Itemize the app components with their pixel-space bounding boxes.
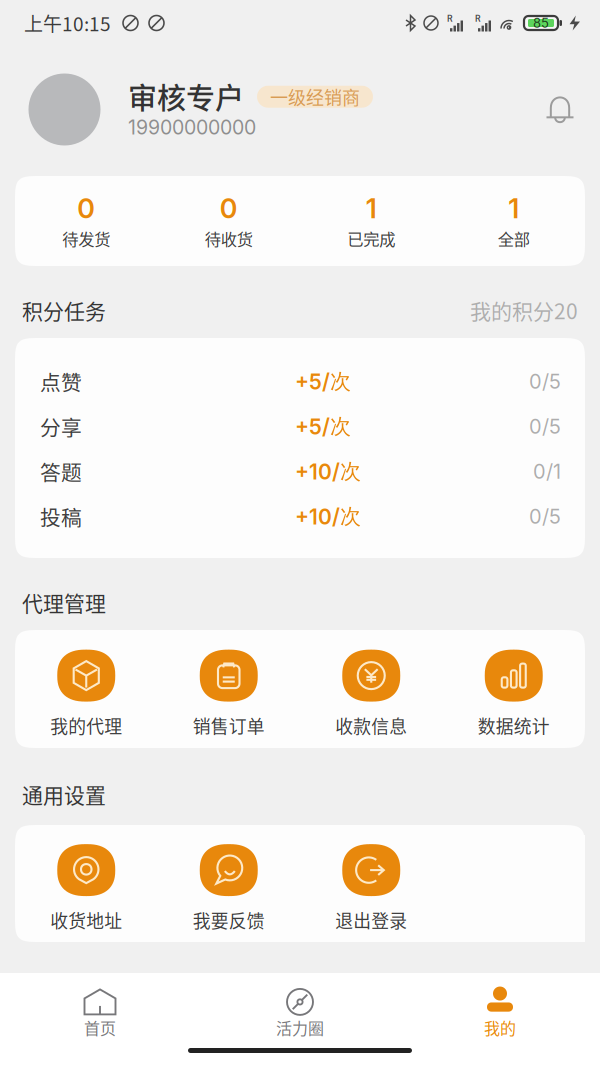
button[interactable]: 1 [300,176,442,266]
staticText: R [475,13,481,24]
staticText: 我要反馈 [193,907,265,933]
staticText: 退出登录 [335,907,407,933]
staticText: +5/次 [295,413,351,440]
staticText: 0 [77,192,95,225]
staticText: 收款信息 [335,713,407,738]
staticText: +5/次 [295,368,351,395]
staticText: +10/次 [295,503,361,530]
staticText: 销售订单 [193,713,265,738]
button[interactable]: 我要反馈 [157,844,300,933]
staticText: 0 [220,192,238,225]
button[interactable]: 退出登录 [300,844,442,933]
staticText: 待收货 [205,227,253,250]
staticText: 19900000000 [128,116,256,139]
button[interactable]: 通知 [534,83,586,135]
staticText: 我的 [484,1016,516,1039]
staticText: 1 [508,192,519,225]
staticText: 首页 [84,1016,116,1039]
button[interactable]: 我的 [400,989,600,1039]
button[interactable]: 首页 [0,989,200,1039]
staticText: 85 [533,15,549,31]
staticText: 全部 [498,227,530,250]
button[interactable]: 点赞 [15,359,585,404]
staticText: 投稿 [40,501,82,531]
button[interactable]: 数据统计 [442,650,585,738]
button[interactable]: 答题 [15,449,585,494]
button[interactable]: 0 [157,176,300,266]
staticText: 一级经销商 [270,84,360,110]
staticText: 0/5 [529,369,561,394]
staticText: 积分任务 [22,295,106,325]
button[interactable]: 分享 [15,404,585,449]
staticText: 点赞 [40,366,82,396]
staticText: 活力圈 [276,1016,324,1039]
staticText: 分享 [40,411,82,441]
staticText: 代理管理 [22,587,106,617]
staticText: 我的积分20 [470,295,578,325]
button[interactable]: 销售订单 [157,650,300,738]
button[interactable]: 1 [442,176,585,266]
staticText: 审核专户 [128,76,244,118]
staticText: 待发货 [62,227,110,250]
staticText: 我的代理 [50,713,122,738]
button[interactable]: 收货地址 [15,844,157,933]
button[interactable]: 活力圈 [200,989,400,1039]
staticText: 已完成 [347,227,395,250]
staticText: 通用设置 [22,779,106,809]
button[interactable]: 收款信息 [300,650,442,738]
staticText: 上午10:15 [24,9,111,37]
button[interactable]: 投稿 [15,494,585,539]
button[interactable]: 我的代理 [15,650,157,738]
staticText: 数据统计 [478,713,550,738]
staticText: 0/5 [529,504,561,529]
staticText: +10/次 [295,458,361,485]
button[interactable]: 0 [15,176,157,266]
staticText: 0/1 [533,459,561,484]
staticText: R [447,13,453,24]
staticText: 答题 [40,456,82,486]
staticText: 收货地址 [50,907,122,933]
staticText: 1 [366,192,377,225]
staticText: 0/5 [529,414,561,439]
